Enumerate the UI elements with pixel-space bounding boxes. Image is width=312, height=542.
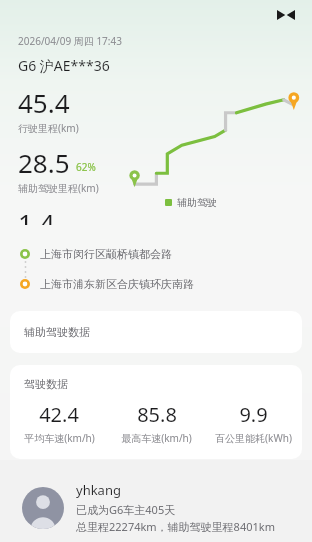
staticText: 85.8: [137, 401, 177, 428]
staticText: 行驶里程(km): [18, 121, 79, 135]
staticText: 辅助驾驶数据: [24, 325, 90, 339]
staticText: 总里程22274km，辅助驾驶里程8401km: [76, 519, 275, 534]
staticText: 辅助驾驶: [177, 196, 217, 209]
staticText: 上海市浦东新区合庆镇环庆南路: [40, 277, 194, 291]
staticText: 百公里能耗(kWh): [215, 431, 292, 445]
button[interactable]: 上海市闵行区颛桥镇都会路: [20, 247, 312, 261]
staticText: 1.4: [18, 205, 55, 225]
button[interactable]: yhkang: [22, 481, 298, 534]
staticText: 45.4: [18, 85, 70, 120]
staticText: G6 沪AE***36: [18, 56, 110, 75]
staticText: 42.4: [39, 401, 79, 428]
staticText: 28.5: [18, 145, 70, 180]
staticText: 驾驶数据: [24, 377, 68, 391]
staticText: 平均车速(km/h): [24, 431, 95, 445]
button[interactable]: Close: [274, 3, 298, 27]
staticText: yhkang: [76, 481, 121, 499]
button[interactable]: 辅助驾驶数据: [10, 311, 302, 353]
staticText: 最高车速(km/h): [121, 431, 192, 445]
staticText: 9.9: [239, 401, 268, 428]
staticText: 上海市闵行区颛桥镇都会路: [40, 247, 172, 261]
button[interactable]: 上海市浦东新区合庆镇环庆南路: [20, 277, 312, 291]
staticText: 2026/04/09 周四 17:43: [18, 34, 122, 48]
staticText: 已成为G6车主405天: [76, 502, 176, 517]
staticText: 辅助驾驶里程(km): [18, 181, 99, 195]
staticText: 62%: [76, 160, 96, 174]
button[interactable]: 驾驶数据: [10, 365, 302, 459]
